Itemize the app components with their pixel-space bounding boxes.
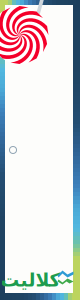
staticText: كلاليت [0, 269, 60, 291]
